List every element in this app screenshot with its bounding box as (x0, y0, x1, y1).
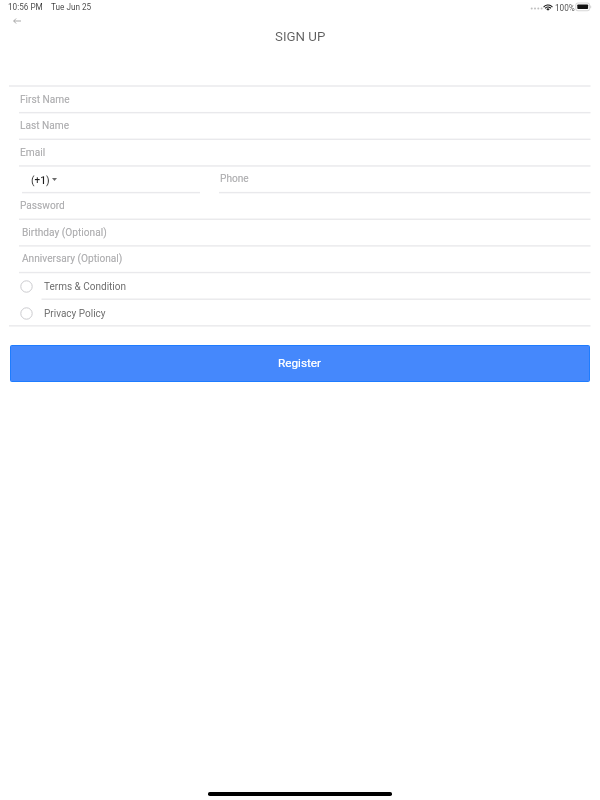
staticText: Anniversary (Optional) (22, 253, 123, 265)
button[interactable]: Last Name (0, 113, 600, 139)
button[interactable]: Anniversary (Optional) (0, 246, 600, 272)
button[interactable]: (+1) (0, 166, 200, 192)
staticText: 100% (555, 3, 575, 13)
staticText: First Name (20, 94, 70, 106)
staticText: Password (20, 200, 65, 212)
staticText: Last Name (20, 120, 70, 132)
button[interactable]: First Name (0, 87, 600, 113)
staticText: Terms & Condition (44, 281, 127, 293)
staticText: 10:56 PM (8, 2, 43, 12)
staticText: Privacy Policy (44, 308, 106, 320)
button[interactable]: Password (0, 193, 600, 219)
staticText: Birthday (Optional) (22, 227, 107, 239)
button[interactable]: Register (11, 346, 589, 381)
staticText: (+1) (31, 175, 50, 187)
button[interactable]: Phone (200, 166, 600, 192)
staticText: SIGN UP (275, 29, 326, 45)
staticText: Tue Jun 25 (51, 2, 92, 12)
button[interactable]: Back (6, 10, 27, 31)
button[interactable]: Terms & Condition (0, 273, 600, 299)
staticText: Phone (220, 173, 249, 185)
button[interactable]: Privacy Policy (0, 300, 600, 326)
staticText: Register (278, 356, 322, 370)
button[interactable]: Email (0, 140, 600, 166)
staticText: Email (20, 147, 46, 159)
button[interactable]: Birthday (Optional) (0, 220, 600, 246)
